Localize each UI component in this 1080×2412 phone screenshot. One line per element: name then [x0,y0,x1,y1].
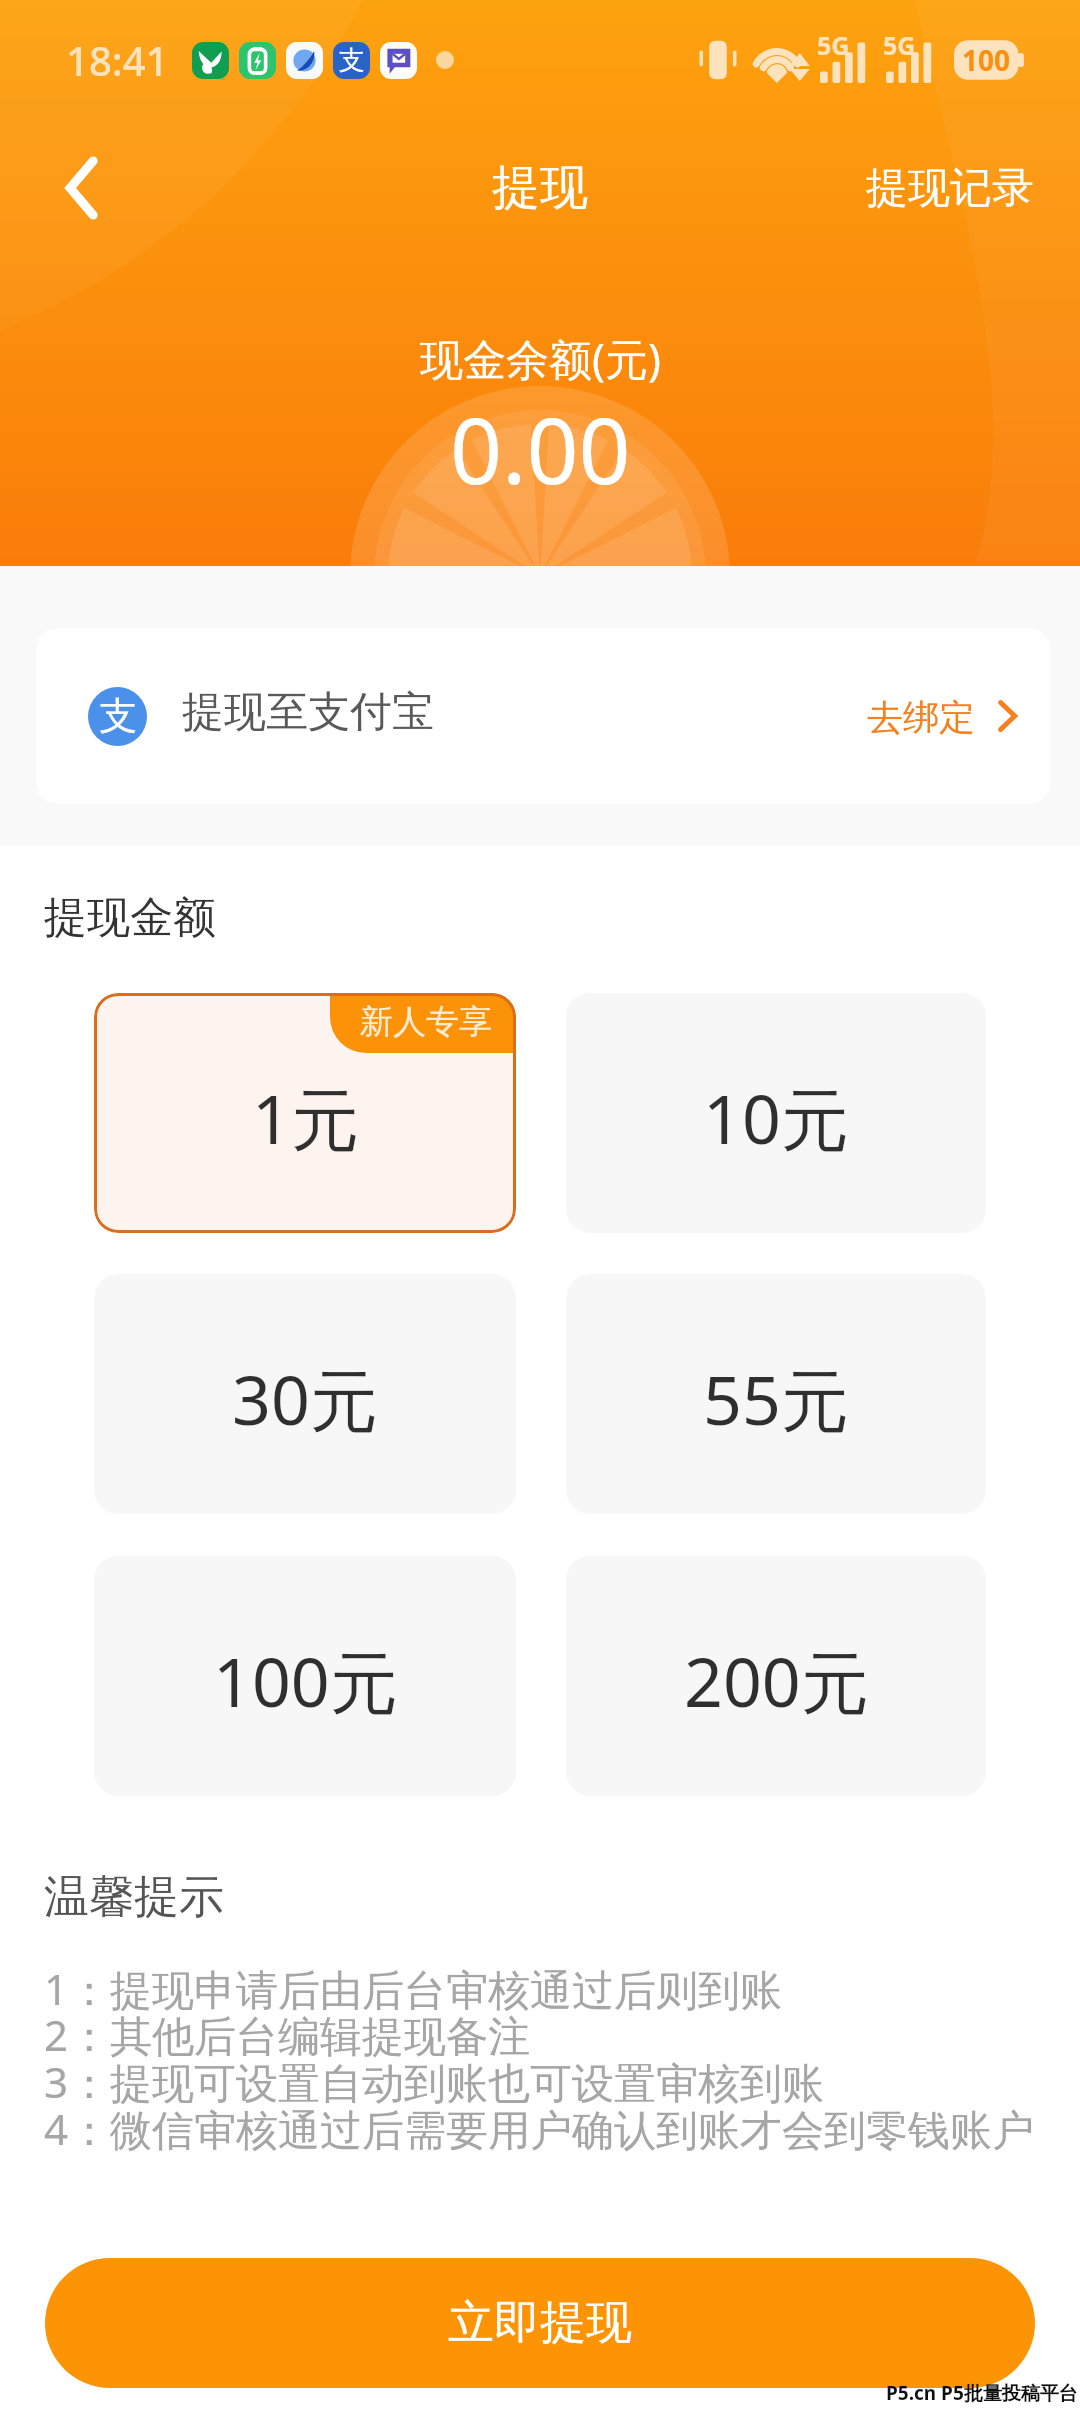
staticText: P5.cn P5批量投稿平台 [886,2380,1078,2406]
staticText: 200元 [684,1634,869,1727]
staticText: 55元 [703,1352,849,1445]
button[interactable]: 1元 [94,993,516,1233]
staticText: 支 [339,44,365,77]
staticText: 提现金额 [44,891,216,945]
button[interactable]: 提现记录 [842,142,1080,235]
button[interactable]: 100元 [94,1556,516,1796]
staticText: 5G [883,28,916,62]
staticText: 100 [962,41,1011,79]
staticText: 温馨提示 [44,1869,224,1926]
staticText: 支 [99,692,137,740]
button[interactable]: 30元 [94,1274,516,1514]
button[interactable]: 55元 [566,1274,986,1514]
button[interactable]: Back [27,134,135,242]
staticText: 1：提现申请后由后台审核通过后则到账 2：其他后台编辑提现备注 3：提现可设置自… [44,1960,1035,2158]
staticText: 提现 [492,158,588,218]
staticText: 新人专享 [360,1001,492,1043]
button[interactable]: 200元 [566,1556,986,1796]
staticText: 30元 [232,1352,378,1445]
staticText: 100元 [213,1634,398,1727]
staticText: 0.00 [450,387,631,511]
staticText: 1元 [252,1071,359,1164]
button[interactable]: 支 [36,628,1050,804]
staticText: 提现至支付宝 [182,686,434,739]
staticText: 现金余额(元) [420,329,661,388]
staticText: 立即提现 [448,2294,632,2352]
button[interactable]: 立即提现 [45,2258,1035,2388]
staticText: 5G [817,28,850,62]
staticText: 去绑定 [867,695,975,740]
staticText: 10元 [703,1071,849,1164]
button[interactable]: 10元 [566,993,986,1233]
staticText: 提现记录 [866,162,1034,215]
staticText: 18:41 [66,33,169,87]
